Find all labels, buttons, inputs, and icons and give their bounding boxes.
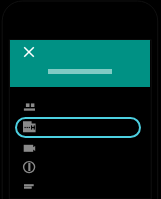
button[interactable]: Close [22, 45, 36, 59]
button[interactable]: Rooms [15, 96, 141, 117]
button[interactable]: SIM card [15, 116, 141, 137]
button[interactable]: Notes [15, 176, 141, 197]
button[interactable] [10, 40, 150, 87]
button[interactable]: Video [15, 137, 141, 158]
button[interactable]: Power [15, 156, 141, 177]
